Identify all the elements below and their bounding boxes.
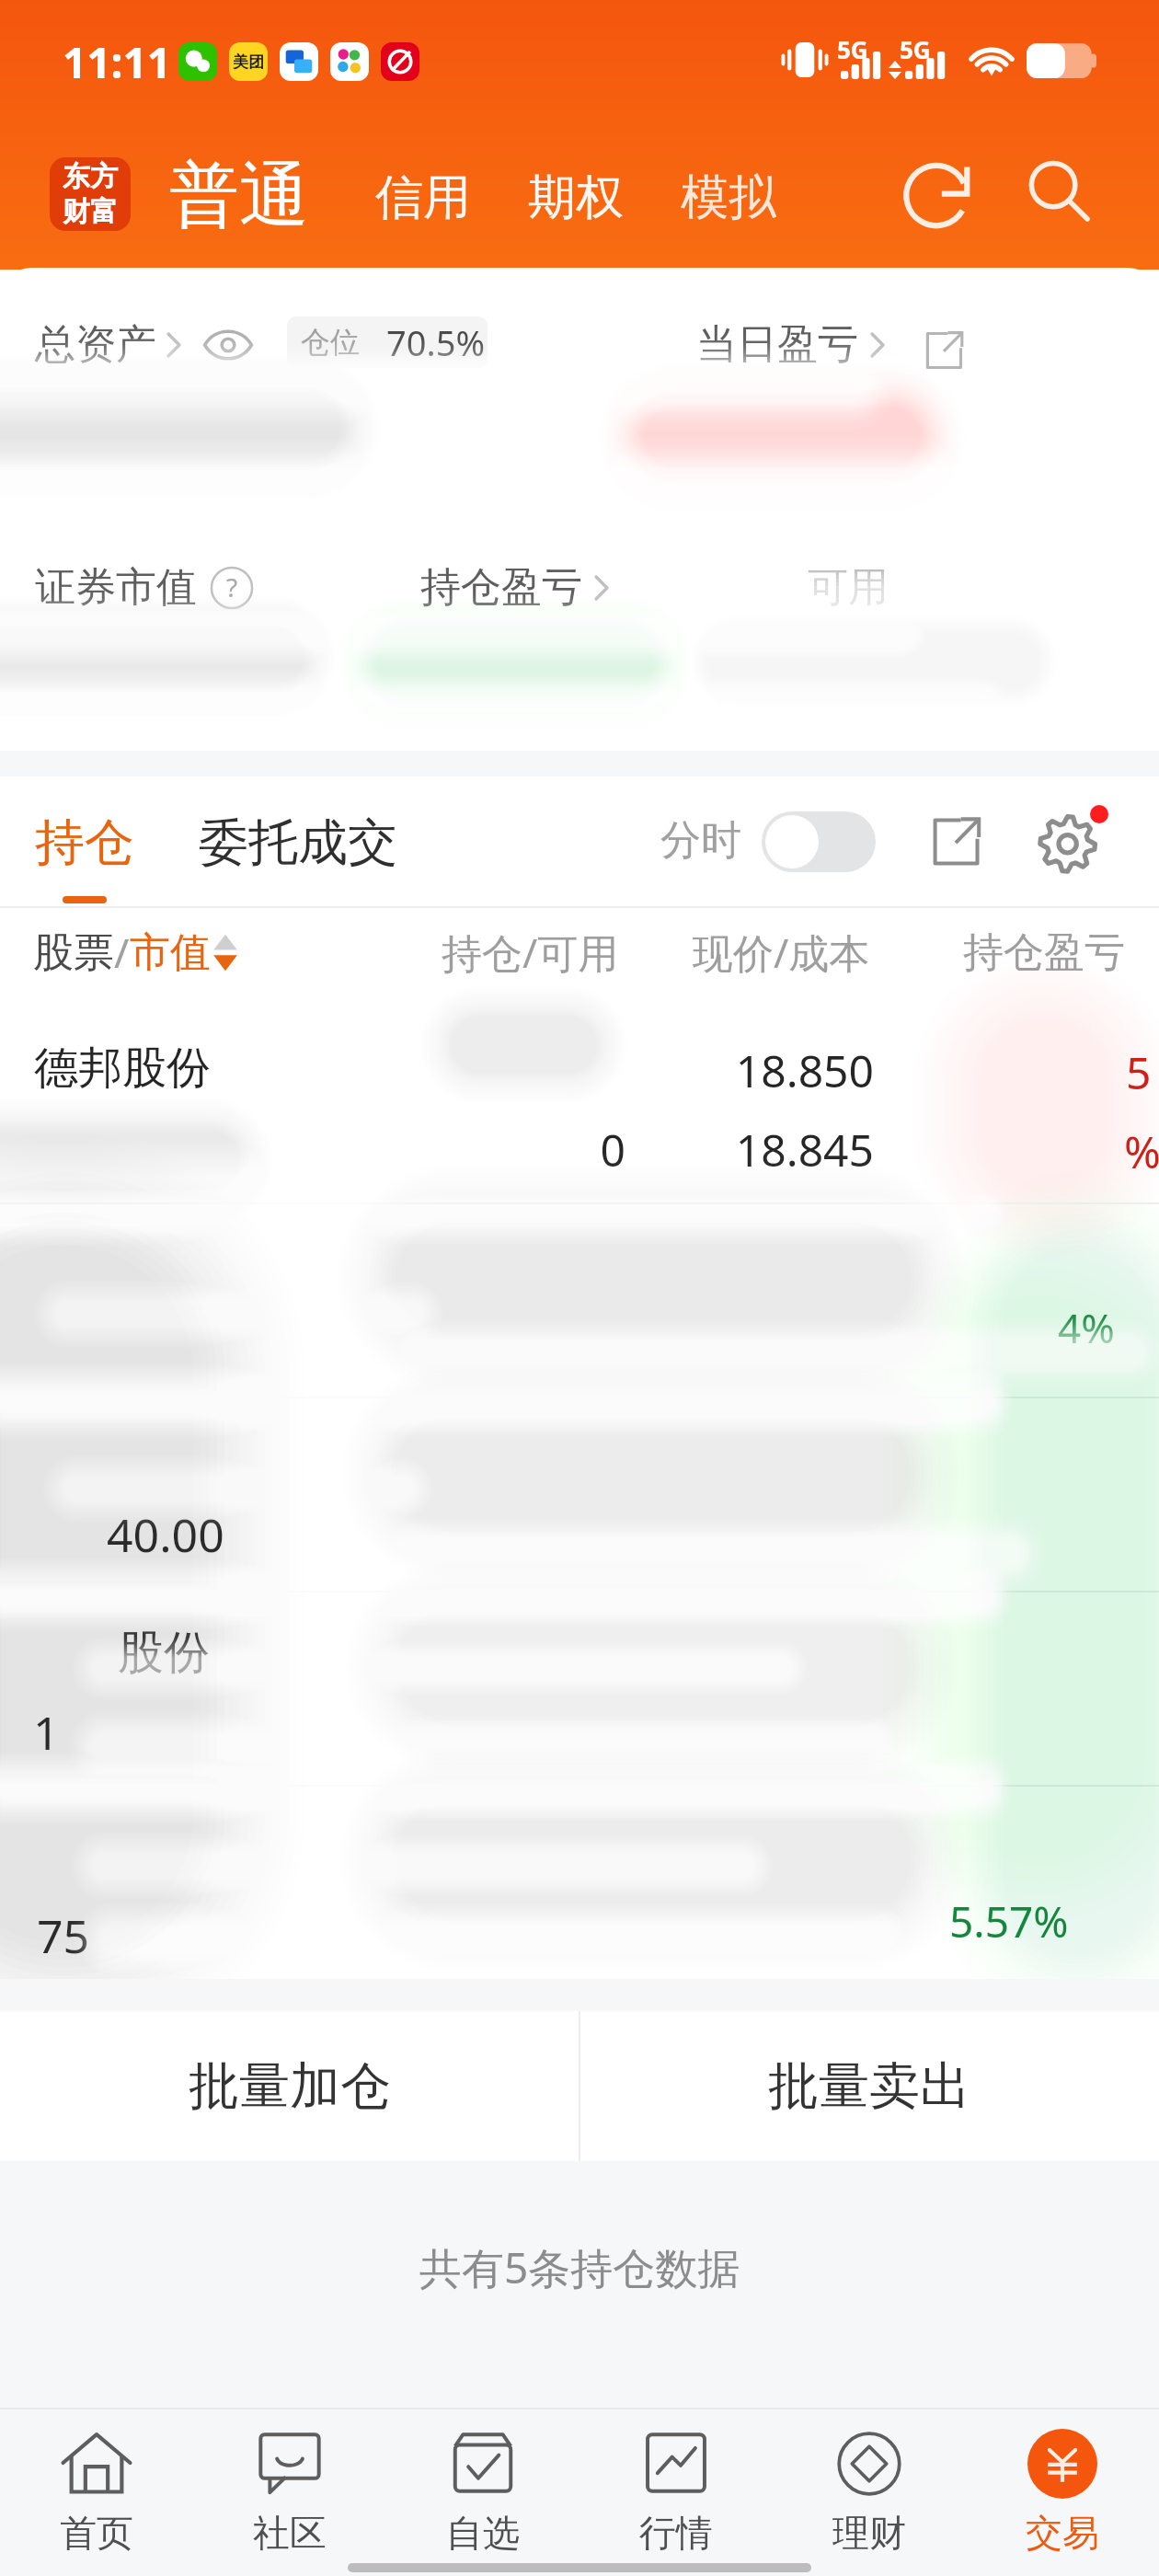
- button[interactable]: 批量卖出: [579, 2011, 1159, 2161]
- button[interactable]: Toggle visibility: [201, 325, 255, 365]
- button[interactable]: Refresh: [898, 153, 981, 236]
- button[interactable]: 理财: [773, 2408, 966, 2576]
- staticText: 美团: [233, 52, 264, 72]
- staticText: %: [1124, 1121, 1159, 1181]
- button[interactable]: 行情: [579, 2408, 773, 2576]
- staticText: 共有5条持仓数据: [419, 2238, 740, 2296]
- button[interactable]: 首页: [0, 2408, 193, 2576]
- staticText: 5G: [837, 33, 868, 65]
- button[interactable]: 信用: [375, 167, 471, 228]
- button[interactable]: 委托成交: [199, 811, 397, 874]
- staticText: 批量加仓: [189, 2054, 391, 2118]
- button[interactable]: Search: [1017, 149, 1100, 232]
- button[interactable]: 普通: [169, 152, 309, 240]
- staticText: 75: [37, 1904, 90, 1967]
- button[interactable]: 期权: [528, 167, 624, 228]
- staticText: /: [114, 925, 130, 980]
- staticText: 40.00: [107, 1503, 224, 1566]
- button[interactable]: East Money logo: [50, 157, 131, 231]
- button[interactable]: 社区: [193, 2408, 386, 2576]
- staticText: 股票: [33, 927, 114, 978]
- staticText: 4%: [1058, 1300, 1115, 1355]
- staticText: 分时: [660, 815, 741, 866]
- button[interactable]: 仓位: [287, 316, 488, 368]
- staticText: 0: [258, 1120, 625, 1179]
- staticText: 18.850: [506, 1041, 874, 1100]
- button[interactable]: Expand: [920, 806, 992, 878]
- staticText: 首页: [60, 2510, 133, 2556]
- staticText: 70.5%: [386, 318, 485, 366]
- button[interactable]: Expand: [916, 323, 971, 378]
- staticText: 5: [1126, 1042, 1152, 1102]
- staticText: 现价/成本: [693, 925, 870, 980]
- staticText: 理财: [832, 2510, 906, 2556]
- staticText: 交易: [1026, 2510, 1099, 2556]
- staticText: 财富: [63, 194, 118, 229]
- staticText: 5.57%: [949, 1892, 1069, 1950]
- staticText: 1: [33, 1701, 60, 1764]
- staticText: 总资产: [35, 319, 156, 370]
- button[interactable]: 当日盈亏: [696, 319, 885, 370]
- staticText: 当日盈亏: [696, 319, 858, 370]
- button[interactable]: 持仓: [35, 811, 134, 874]
- button[interactable]: 自选: [386, 2408, 579, 2576]
- staticText: 18.845: [506, 1120, 874, 1179]
- button[interactable]: 批量加仓: [0, 2011, 579, 2161]
- button[interactable]: [0, 996, 1159, 1202]
- staticText: 持仓盈亏: [963, 927, 1125, 978]
- staticText: 批量卖出: [768, 2054, 970, 2118]
- staticText: 德邦股份: [34, 1041, 211, 1096]
- button[interactable]: 总资产: [35, 319, 181, 370]
- staticText: 5G: [900, 33, 931, 65]
- staticText: 仓位: [301, 324, 360, 361]
- staticText: ?: [226, 569, 238, 604]
- button[interactable]: 交易: [966, 2408, 1159, 2576]
- staticText: 持仓盈亏: [420, 562, 582, 613]
- staticText: 行情: [639, 2510, 713, 2556]
- staticText: 社区: [253, 2510, 327, 2556]
- staticText: 东方: [63, 159, 118, 194]
- staticText: 市值: [130, 927, 211, 978]
- button[interactable]: Intraday toggle: [762, 811, 876, 872]
- staticText: 自选: [446, 2510, 520, 2556]
- button[interactable]: 模拟: [681, 167, 776, 228]
- button[interactable]: 持仓盈亏: [420, 562, 609, 613]
- staticText: 持仓/可用: [442, 925, 619, 980]
- staticText: 股份: [118, 1624, 210, 1682]
- staticText: 11:11: [63, 33, 172, 91]
- button[interactable]: Settings: [1032, 802, 1109, 880]
- staticText: 证券市值: [35, 562, 197, 613]
- staticText: 可用: [808, 562, 889, 613]
